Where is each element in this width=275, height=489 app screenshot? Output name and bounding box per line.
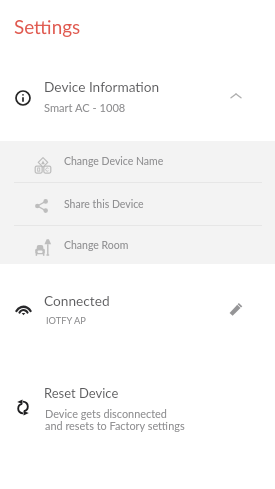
staticText: Share this Device [64,198,144,211]
button[interactable]: Change Device Name [0,141,275,182]
button[interactable]: Change Room [0,226,275,264]
other: Device information [15,90,31,106]
staticText: Device Information [44,78,160,94]
staticText: IOTFY AP [46,315,86,326]
other: Reset device [17,400,29,415]
button[interactable]: Device information [0,62,275,141]
staticText: Device gets disconnected and resets to F… [45,407,185,432]
button[interactable]: Share this Device [0,183,275,225]
staticText: Reset Device [44,385,119,401]
staticText: Connected [44,292,110,308]
other: Wi-Fi connection [15,304,32,315]
staticText: Smart AC - 1008 [44,101,126,114]
staticText: Change Device Name [64,155,164,168]
staticText: Settings [14,15,81,38]
button[interactable]: Reset device [0,373,275,443]
other: Edit network name [229,302,243,316]
other: Collapse section [231,91,241,101]
button[interactable]: Wi-Fi connection [0,272,275,352]
staticText: Change Room [64,239,129,252]
